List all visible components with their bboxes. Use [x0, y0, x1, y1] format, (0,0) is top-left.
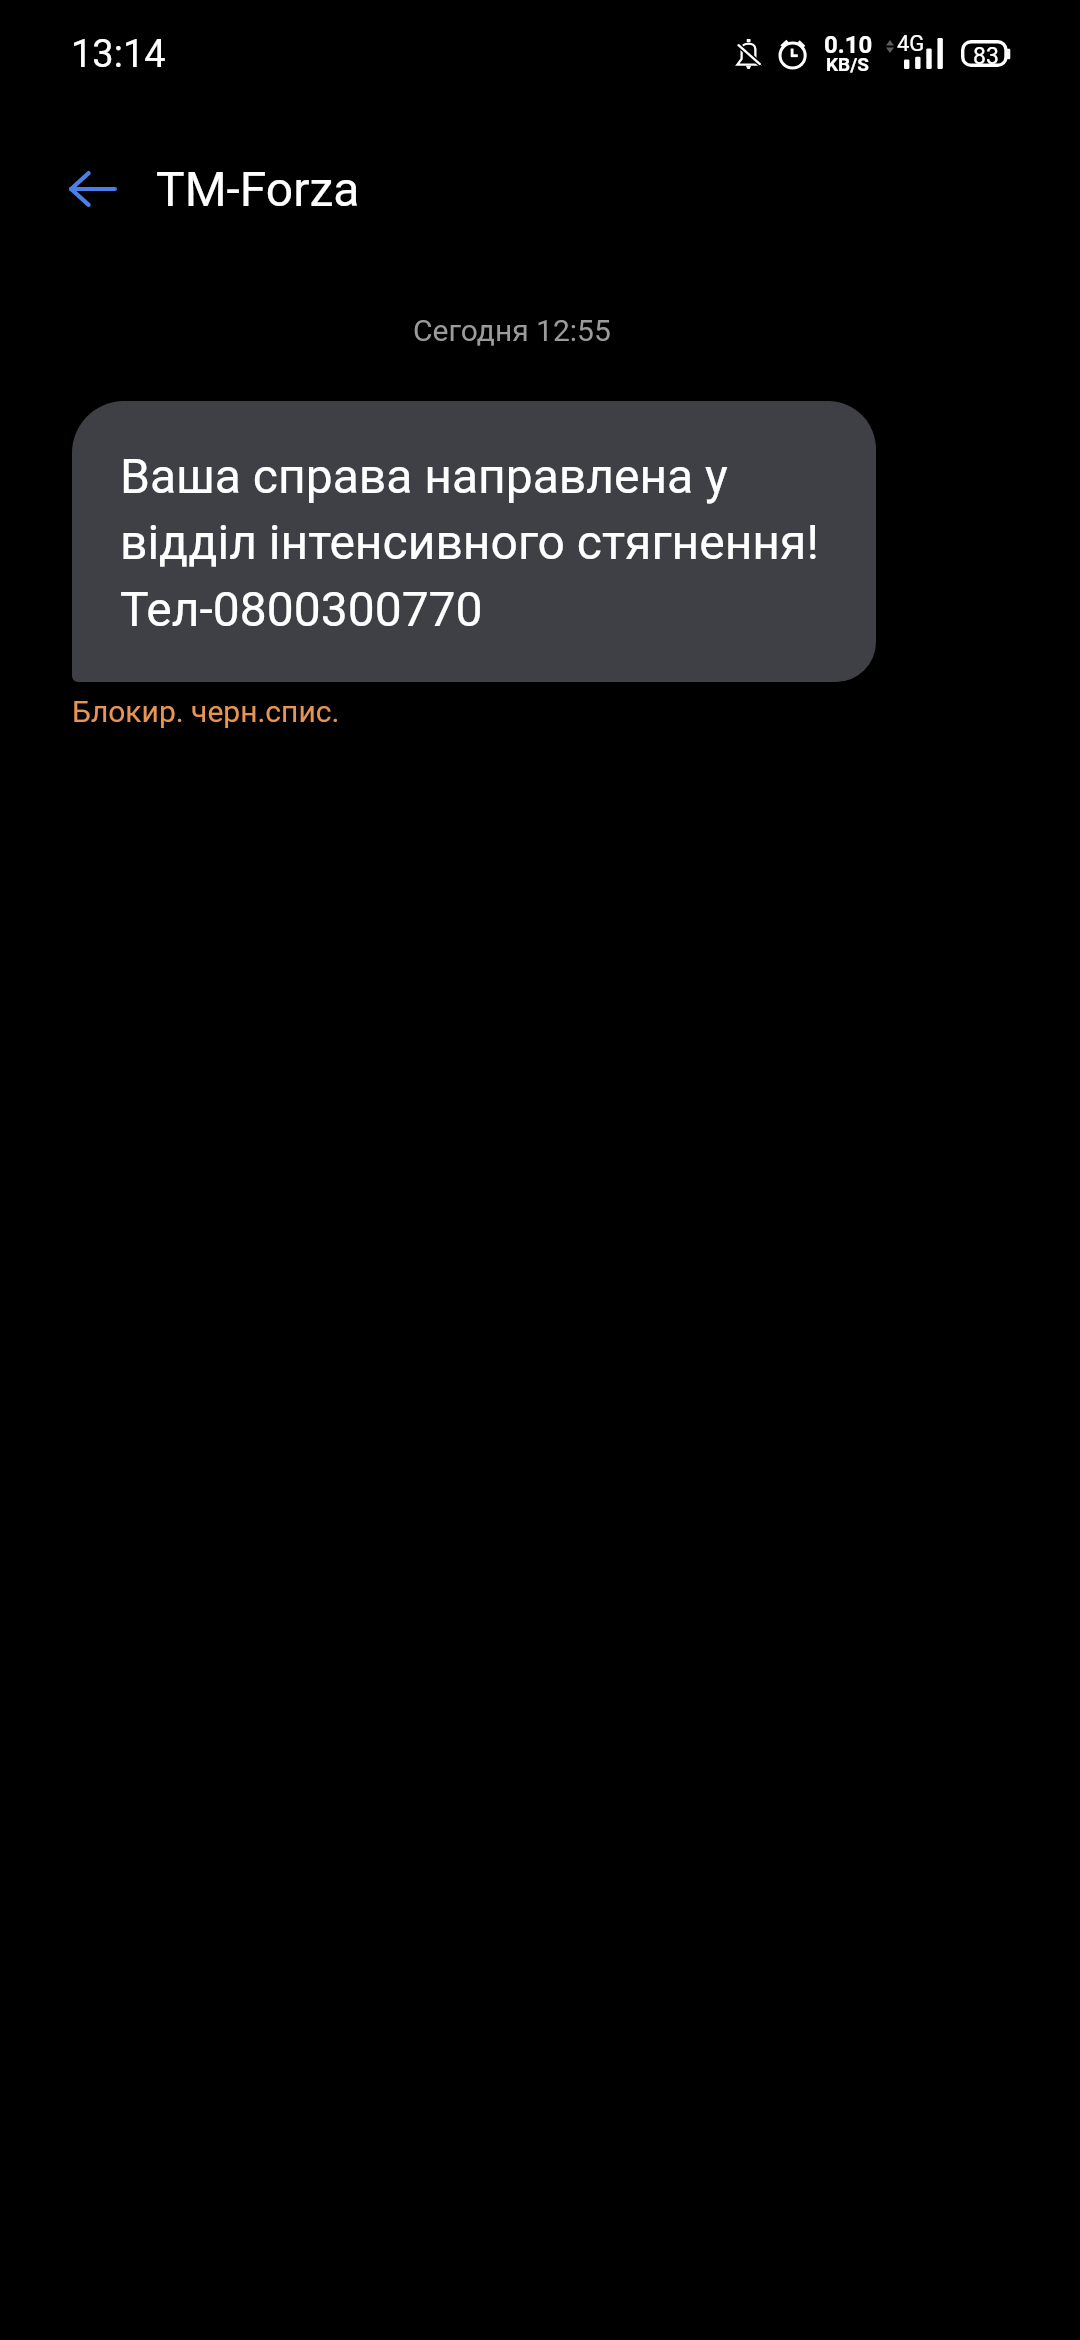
- button[interactable]: TM-Forza: [144, 143, 384, 231]
- staticText: Ваша справа направлена у відділ інтенсив…: [120, 448, 819, 638]
- staticText: TM-Forza: [156, 161, 360, 217]
- staticText: KB/S: [826, 53, 869, 75]
- staticText: 83: [973, 43, 999, 70]
- button[interactable]: Блокир. черн.спис.: [72, 694, 344, 729]
- staticText: 0.10: [824, 31, 873, 59]
- staticText: 4G: [897, 31, 925, 57]
- staticText: Блокир. черн.спис.: [72, 694, 340, 729]
- staticText: 13:14: [71, 32, 166, 77]
- button[interactable]: Back: [45, 153, 141, 225]
- button[interactable]: Ваша справа направлена у відділ інтенсив…: [72, 401, 876, 682]
- staticText: Сегодня 12:55: [413, 313, 611, 348]
